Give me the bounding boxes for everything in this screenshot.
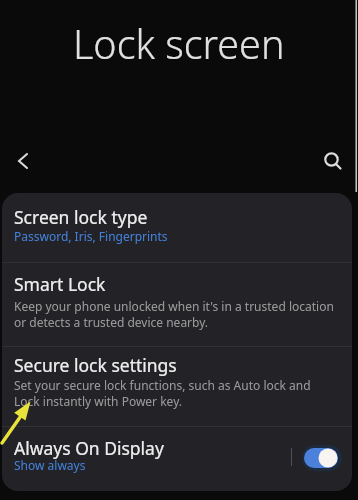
button[interactable]: Secure lock settings (2, 347, 352, 426)
staticText: Show always (14, 457, 86, 473)
staticText: Always On Display (14, 436, 164, 460)
button[interactable]: Smart Lock (2, 263, 352, 346)
staticText: Set your secure lock functions, such as … (14, 377, 311, 393)
staticText: or detects a trusted device nearby. (14, 314, 209, 330)
staticText: Password, Iris, Fingerprints (14, 228, 168, 244)
button[interactable]: Screen lock type (2, 193, 352, 262)
staticText: Lock instantly with Power key. (14, 393, 182, 409)
staticText: Keep your phone unlocked when it's in a … (14, 298, 334, 314)
button[interactable] (302, 445, 344, 473)
staticText: Smart Lock (14, 272, 106, 296)
staticText: Screen lock type (14, 205, 148, 229)
button[interactable] (6, 145, 38, 177)
staticText: Lock screen (73, 17, 285, 71)
button[interactable] (317, 145, 349, 177)
button[interactable]: Always On Display (2, 427, 352, 491)
staticText: Secure lock settings (14, 353, 177, 377)
